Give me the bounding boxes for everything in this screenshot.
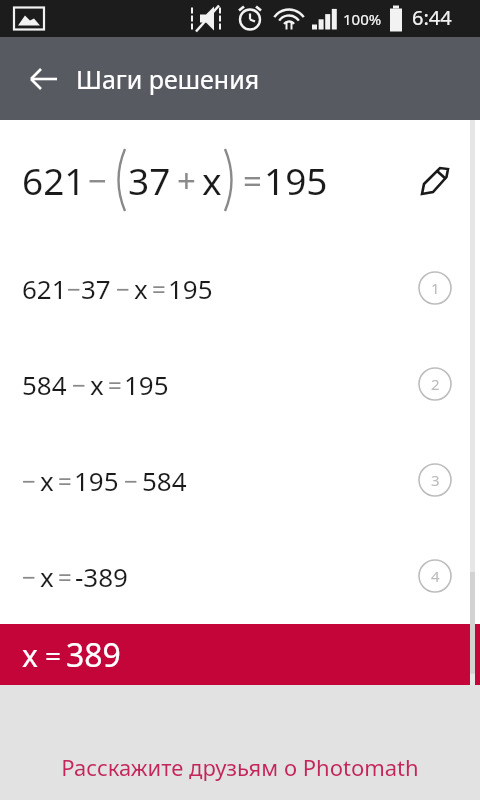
staticText: x — [22, 635, 38, 676]
staticText: 389 — [66, 633, 121, 677]
staticText: 621 — [22, 271, 67, 306]
staticText: 584 — [142, 463, 187, 498]
staticText: = — [58, 464, 72, 497]
staticText: − — [67, 272, 81, 305]
staticText: Расскажите друзьям о Photomath — [61, 752, 419, 782]
staticText: Шаги решения — [76, 62, 260, 96]
staticText: 584 — [22, 367, 67, 402]
button[interactable]: x — [0, 624, 480, 685]
staticText: x — [134, 271, 148, 306]
staticText: x — [90, 367, 104, 402]
button[interactable]: 621 — [0, 120, 480, 240]
staticText: = — [152, 272, 166, 305]
staticText: = — [243, 158, 262, 203]
staticText: − — [22, 560, 36, 593]
staticText: − — [22, 464, 36, 497]
staticText: − — [72, 368, 86, 401]
staticText: 195 — [264, 155, 328, 205]
staticText: 195 — [74, 463, 119, 498]
staticText: 195 — [168, 271, 213, 306]
staticText: x — [202, 155, 222, 205]
staticText: 37 — [128, 155, 171, 205]
staticText: 4 — [431, 566, 440, 586]
staticText: = — [45, 636, 62, 674]
staticText: 621 — [22, 155, 86, 205]
staticText: 37 — [81, 271, 111, 306]
staticText: = — [108, 368, 122, 401]
staticText: 2 — [431, 374, 440, 394]
button[interactable]: − — [0, 528, 480, 624]
staticText: + — [177, 158, 196, 203]
staticText: 3 — [431, 470, 440, 490]
staticText: − — [116, 272, 130, 305]
staticText: = — [58, 560, 72, 593]
staticText: x — [40, 559, 54, 594]
button[interactable]: Back — [18, 53, 70, 105]
button[interactable]: 621 — [0, 240, 480, 336]
button[interactable]: 584 — [0, 336, 480, 432]
staticText: -389 — [75, 559, 128, 594]
staticText: − — [88, 158, 107, 203]
staticText: x — [40, 463, 54, 498]
staticText: − — [124, 464, 138, 497]
button[interactable]: − — [0, 432, 480, 528]
button[interactable]: Edit equation — [410, 154, 462, 206]
staticText: 6:44 — [412, 4, 452, 31]
staticText: 100% — [343, 9, 382, 29]
staticText: 1 — [431, 278, 440, 298]
staticText: 195 — [124, 367, 169, 402]
button[interactable]: Расскажите друзьям о Photomath — [0, 685, 480, 800]
